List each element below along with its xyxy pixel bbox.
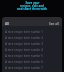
staticText: A nice recipe item numbr 3 bbox=[5, 42, 43, 46]
staticText: recipes, edit and bbox=[20, 4, 44, 8]
button[interactable]: A nice recipe item numbr 3 bbox=[2, 41, 62, 47]
staticText: A nice recipe item numbr 4 bbox=[5, 48, 43, 52]
staticText: A nice recipe item numbr 5 bbox=[5, 54, 43, 58]
staticText: A nice recipe item numbr 2 bbox=[5, 36, 43, 40]
button[interactable]: A nice recipe item numbr 6 bbox=[2, 59, 62, 65]
staticText: Save your bbox=[25, 1, 40, 5]
staticText: A nice recipe item numbr 7 bbox=[5, 66, 43, 70]
staticText: All bbox=[5, 22, 10, 26]
button[interactable]: A nice recipe item numbr 7 bbox=[2, 65, 62, 71]
staticText: See all bbox=[49, 22, 59, 26]
button[interactable]: A nice recipe item numbr 1 bbox=[2, 29, 62, 35]
button[interactable]: A nice recipe item numbr 5 bbox=[2, 53, 62, 59]
button[interactable]: A nice recipe item numbr 2 bbox=[2, 35, 62, 41]
staticText: A nice recipe item numbr 1 bbox=[5, 30, 43, 34]
staticText: and share them with bbox=[17, 7, 47, 11]
staticText: A nice recipe item numbr 6 bbox=[5, 60, 43, 64]
button[interactable]: A nice recipe item numbr 4 bbox=[2, 47, 62, 53]
